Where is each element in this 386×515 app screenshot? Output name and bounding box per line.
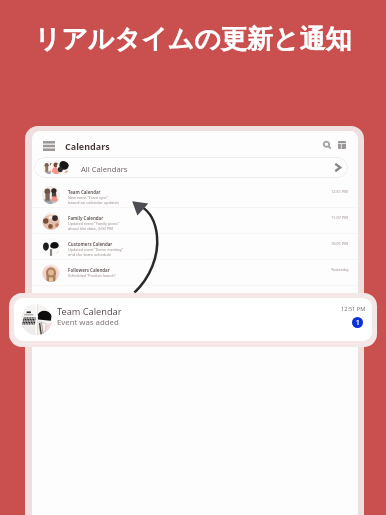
button[interactable]: Team Calendar (14, 298, 372, 341)
button[interactable]: Customers Calendar (32, 234, 358, 260)
staticText: Customers Calendar (68, 241, 113, 247)
button[interactable]: Calendar view (338, 141, 346, 149)
staticText: 1 (356, 318, 360, 327)
staticText: Team Calendar (68, 189, 101, 195)
staticText: Event was added (57, 317, 119, 328)
staticText: Updated event “Family picnic” (68, 221, 120, 226)
staticText: 10:01 PM (331, 241, 348, 246)
staticText: All Calendars (81, 164, 128, 174)
staticText: 12:51 PM (341, 305, 366, 313)
staticText: 11:07 PM (331, 215, 348, 220)
button[interactable]: Followers Calendar (32, 260, 358, 286)
staticText: Calendars (65, 140, 110, 152)
button[interactable]: Family Calendar (32, 208, 358, 234)
staticText: Family Calendar (68, 215, 104, 221)
staticText: based on calendar updates (68, 200, 119, 205)
staticText: Scheduled “Product launch” (68, 273, 116, 278)
staticText: リアルタイムの更新と通知 (0, 23, 386, 56)
button[interactable]: Team Calendar (32, 182, 358, 208)
staticText: New event “Team sync” (68, 195, 109, 200)
staticText: Followers Calendar (68, 267, 110, 273)
staticText: about the date, 3:00 PM (68, 226, 113, 231)
staticText: 12:51 PM (331, 189, 348, 194)
staticText: and the team schedule (68, 252, 111, 257)
button[interactable]: Menu (43, 141, 55, 151)
staticText: Yesterday (331, 267, 349, 272)
staticText: Team Calendar (57, 305, 122, 318)
button[interactable]: All Calendars (34, 157, 348, 178)
staticText: Updated event “Demo meeting” (68, 247, 123, 252)
button[interactable]: Search (323, 141, 331, 149)
